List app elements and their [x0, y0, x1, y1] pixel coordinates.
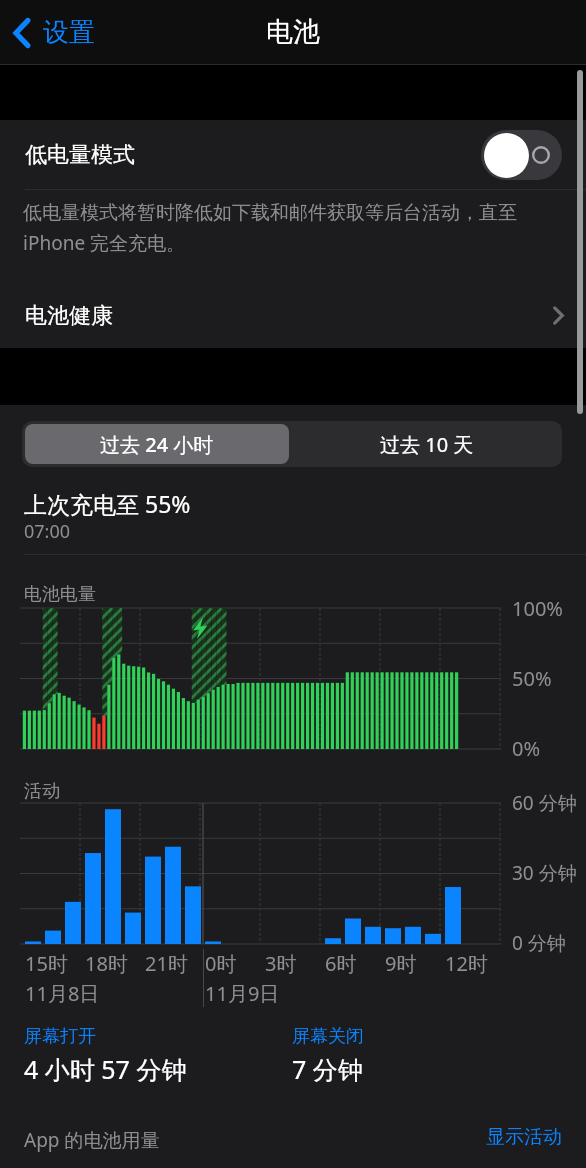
staticText: 18时: [85, 950, 128, 977]
staticText: 0 分钟: [512, 930, 566, 956]
staticText: 低电量模式将暂时降低如下载和邮件获取等后台活动，直至: [23, 201, 517, 225]
button[interactable]: Low Power Mode toggle: [481, 130, 562, 180]
staticText: 低电量模式: [25, 141, 135, 169]
staticText: 屏幕打开: [24, 1025, 96, 1048]
staticText: 60 分钟: [512, 790, 577, 816]
staticText: 0%: [512, 735, 541, 762]
staticText: 电池: [266, 15, 320, 49]
staticText: 电池电量: [24, 583, 96, 606]
staticText: 7 分钟: [292, 1052, 363, 1086]
staticText: 4 小时 57 分钟: [24, 1052, 187, 1086]
staticText: 过去 24 小时: [100, 431, 214, 458]
staticText: 活动: [24, 780, 60, 803]
button[interactable]: 电池健康: [0, 283, 586, 348]
staticText: 100%: [512, 595, 563, 622]
button[interactable]: 过去 24 小时: [25, 424, 289, 464]
staticText: 电池健康: [25, 302, 113, 330]
staticText: 上次充电至 55%: [24, 488, 191, 519]
staticText: 30 分钟: [512, 860, 577, 886]
staticText: 11月9日: [205, 980, 280, 1007]
staticText: 50%: [512, 665, 552, 692]
staticText: 21时: [145, 950, 188, 977]
button[interactable]: 过去 10 天: [294, 424, 559, 464]
button[interactable]: 显示活动: [486, 1125, 562, 1149]
staticText: 15时: [25, 950, 68, 977]
staticText: 显示活动: [486, 1125, 562, 1149]
staticText: 9时: [385, 950, 417, 977]
staticText: App 的电池用量: [24, 1127, 160, 1153]
button[interactable]: Back to Settings: [6, 8, 99, 57]
staticText: 屏幕关闭: [292, 1025, 364, 1048]
staticText: 12时: [445, 950, 488, 977]
staticText: iPhone 完全充电。: [23, 230, 186, 256]
staticText: 6时: [325, 950, 357, 977]
staticText: 过去 10 天: [380, 431, 474, 458]
button[interactable]: 低电量模式: [0, 120, 586, 189]
staticText: 3时: [265, 950, 297, 977]
staticText: 07:00: [24, 519, 71, 544]
staticText: 0时: [205, 950, 237, 977]
staticText: 设置: [43, 16, 95, 49]
staticText: 11月8日: [25, 980, 100, 1007]
